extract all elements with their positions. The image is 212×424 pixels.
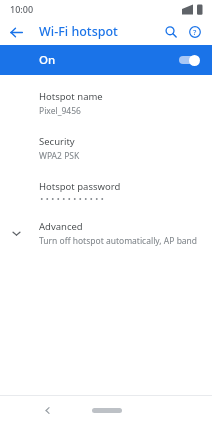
button[interactable]: Home (90, 403, 124, 417)
staticText: Hotspot name (39, 90, 103, 103)
staticText: On (39, 52, 56, 68)
button[interactable]: Hotspot password (0, 171, 212, 211)
staticText: WPA2 PSK (39, 150, 80, 162)
button[interactable]: Search (159, 20, 183, 44)
button[interactable]: Help (183, 20, 207, 44)
button[interactable]: Security (0, 126, 212, 171)
button[interactable]: Hotspot name (0, 81, 212, 126)
button[interactable]: Advanced (0, 211, 212, 256)
button[interactable]: On (0, 45, 212, 75)
staticText: Advanced (39, 220, 83, 233)
staticText: Hotspot password (39, 180, 121, 193)
staticText: ? (193, 27, 197, 37)
staticText: Pixel_9456 (39, 105, 81, 117)
button[interactable]: Back (36, 399, 58, 421)
staticText: Wi-Fi hotspot (39, 23, 118, 40)
staticText: Turn off hotspot automatically, AP band (39, 235, 198, 247)
button[interactable]: Back (3, 19, 29, 45)
staticText: Security (39, 135, 75, 148)
staticText: 10:00 (10, 3, 34, 15)
